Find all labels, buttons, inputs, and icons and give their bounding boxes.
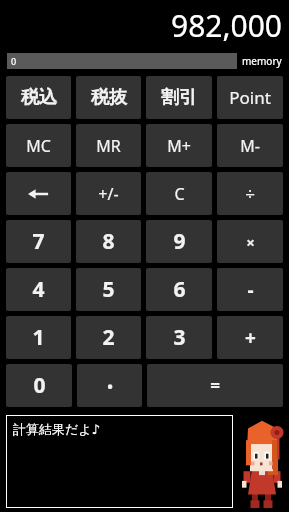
button[interactable]: ÷ <box>217 172 283 215</box>
staticText: +/- <box>98 183 119 205</box>
staticText: MC <box>26 135 51 157</box>
button[interactable]: + <box>217 316 283 359</box>
staticText: 1 <box>32 323 45 352</box>
button[interactable]: 8 <box>76 220 141 263</box>
button[interactable]: Point <box>217 76 283 119</box>
button[interactable]: M+ <box>146 124 212 167</box>
button[interactable]: 税込 <box>6 76 71 119</box>
staticText: 5 <box>102 275 115 304</box>
button[interactable]: 7 <box>6 220 71 263</box>
staticText: 6 <box>173 275 186 304</box>
staticText: + <box>245 325 256 351</box>
button[interactable]: MC <box>6 124 71 167</box>
staticText: 税抜 <box>91 86 127 109</box>
staticText: M- <box>240 135 260 157</box>
button[interactable]: 1 <box>6 316 71 359</box>
button[interactable]: 割引 <box>146 76 212 119</box>
staticText: - <box>247 277 254 303</box>
button[interactable]: 6 <box>146 268 212 311</box>
staticText: 割引 <box>161 86 197 109</box>
button[interactable]: MR <box>76 124 141 167</box>
staticText: Point <box>229 86 271 109</box>
staticText: 8 <box>102 227 115 256</box>
staticText: MR <box>96 135 121 157</box>
button[interactable]: • <box>77 364 142 407</box>
staticText: × <box>246 232 255 252</box>
button[interactable]: 4 <box>6 268 71 311</box>
other: Mascot character <box>237 413 287 510</box>
button[interactable]: 0 <box>6 364 72 407</box>
staticText: 計算結果だよ♪ <box>13 421 100 437</box>
button[interactable]: 0 <box>7 53 237 69</box>
staticText: • <box>107 376 113 396</box>
staticText: 0 <box>11 55 17 67</box>
staticText: memory <box>242 54 282 68</box>
button[interactable]: 9 <box>146 220 212 263</box>
staticText: 982,000 <box>171 5 282 46</box>
staticText: M+ <box>167 135 191 157</box>
staticText: 2 <box>102 323 115 352</box>
staticText: 税込 <box>21 86 57 109</box>
staticText: 0 <box>33 371 46 400</box>
button[interactable]: 計算結果だよ♪ <box>6 415 233 508</box>
staticText: C <box>174 183 185 205</box>
staticText: 4 <box>32 275 45 304</box>
staticText: 9 <box>173 227 186 256</box>
staticText: 7 <box>32 227 45 256</box>
button[interactable]: × <box>217 220 283 263</box>
button[interactable]: C <box>146 172 212 215</box>
staticText: = <box>210 374 220 397</box>
button[interactable]: = <box>147 364 283 407</box>
button[interactable]: - <box>217 268 283 311</box>
button[interactable]: +/- <box>76 172 141 215</box>
button[interactable]: 5 <box>76 268 141 311</box>
button[interactable]: M- <box>217 124 283 167</box>
button[interactable]: 2 <box>76 316 141 359</box>
button[interactable]: 3 <box>146 316 212 359</box>
staticText: 3 <box>173 323 186 352</box>
button[interactable]: 税抜 <box>76 76 141 119</box>
button[interactable]: Backspace <box>6 172 71 215</box>
staticText: ÷ <box>245 182 255 205</box>
